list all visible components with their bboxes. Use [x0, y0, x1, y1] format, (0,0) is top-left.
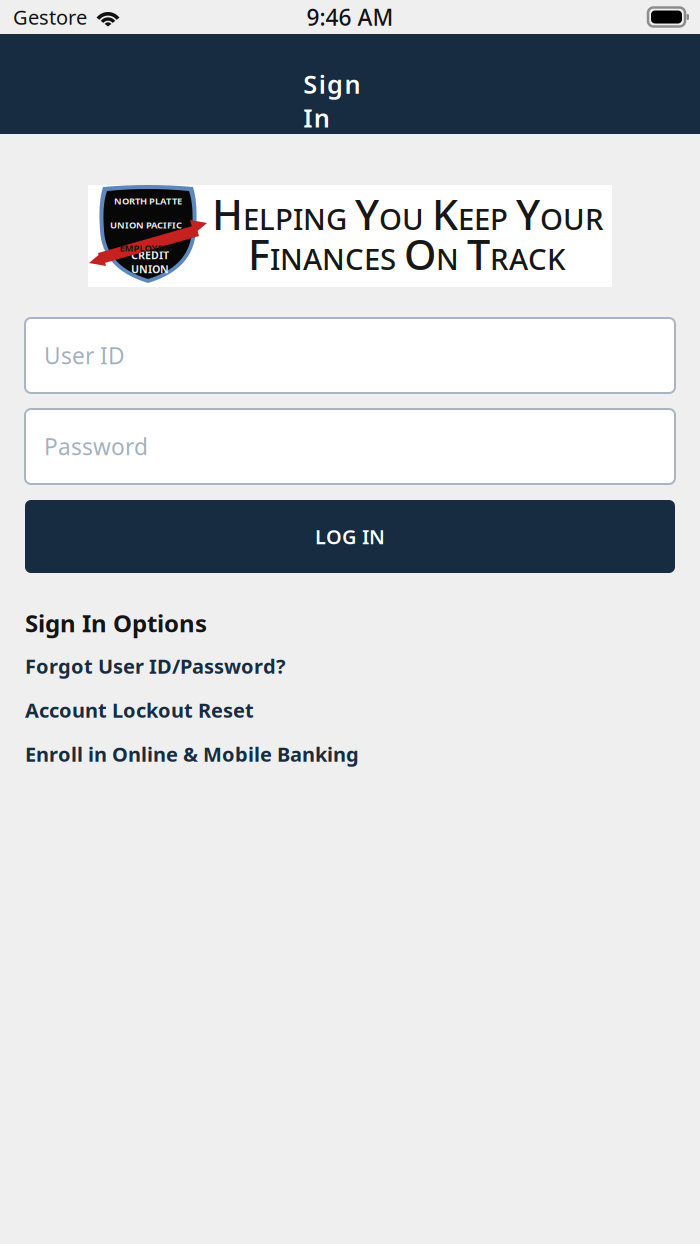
staticText: FINANCES ON TRACK — [248, 227, 566, 281]
button[interactable]: LOG IN — [25, 500, 675, 573]
staticText: Account Lockout Reset — [25, 697, 254, 723]
staticText: LOG IN — [315, 523, 385, 550]
staticText: Sign In Options — [25, 607, 207, 639]
staticText: Sign In — [303, 67, 397, 101]
button[interactable]: Enroll in Online & Mobile Banking — [25, 732, 675, 776]
button[interactable]: User ID — [25, 318, 675, 393]
staticText: Enroll in Online & Mobile Banking — [25, 741, 359, 767]
staticText: EMPLOYEES — [119, 242, 172, 254]
staticText: NORTH PLATTE — [114, 195, 182, 207]
staticText: User ID — [44, 340, 125, 370]
staticText: Password — [44, 431, 148, 461]
staticText: 9:46 AM — [306, 2, 393, 32]
staticText: UNION — [131, 262, 169, 276]
staticText: HELPING YOU KEEP YOUR — [212, 187, 604, 241]
button[interactable]: Password — [25, 409, 675, 484]
button[interactable]: Forgot User ID/Password? — [25, 644, 675, 688]
staticText: Gestore — [13, 4, 87, 30]
staticText: UNION PACIFIC — [110, 219, 182, 231]
button[interactable]: Account Lockout Reset — [25, 688, 675, 732]
staticText: Forgot User ID/Password? — [25, 653, 286, 679]
staticText: CREDIT — [131, 248, 169, 262]
